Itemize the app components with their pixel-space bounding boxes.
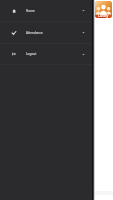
button[interactable]: Close navigation drawer <box>92 0 113 200</box>
staticText: Logout <box>26 52 37 56</box>
staticText: Attendance <box>26 31 43 35</box>
staticText: Lucky <box>98 13 109 18</box>
button[interactable]: Attendance <box>0 22 92 43</box>
button[interactable]: Lucky app <box>95 1 112 18</box>
staticText: Home <box>26 9 35 13</box>
button[interactable]: Home <box>0 0 92 21</box>
button[interactable]: Logout <box>0 44 92 64</box>
